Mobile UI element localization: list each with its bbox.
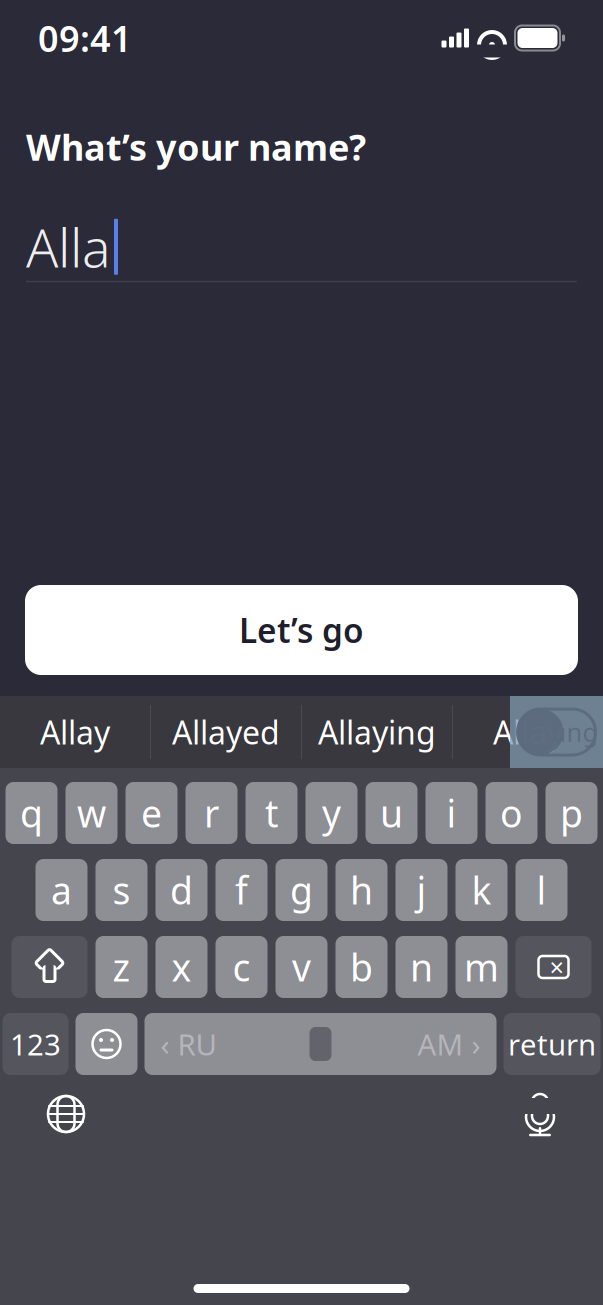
button[interactable]: Dictation [522, 1091, 558, 1137]
staticText: Allay [40, 711, 110, 753]
button[interactable]: m [455, 936, 507, 998]
staticText: Alla [26, 211, 111, 282]
staticText: t [265, 788, 278, 838]
staticText: return [508, 1024, 596, 1063]
button[interactable]: p [545, 782, 597, 844]
staticText: r [204, 788, 219, 838]
staticText: x [171, 942, 191, 992]
staticText: Allay [493, 711, 563, 753]
button[interactable]: c [215, 936, 267, 998]
staticText: y [322, 788, 341, 838]
button[interactable]: Next keyboard [45, 1093, 87, 1135]
staticText: z [112, 942, 130, 992]
staticText: o [500, 788, 523, 838]
button[interactable]: v [275, 936, 327, 998]
staticText: q [20, 788, 43, 838]
button[interactable]: j [395, 859, 447, 921]
staticText: 09:41 [38, 14, 132, 62]
button[interactable]: w [65, 782, 117, 844]
button[interactable]: t [245, 782, 297, 844]
button[interactable]: k [455, 859, 507, 921]
staticText: m [464, 942, 499, 992]
staticText: 123 [10, 1024, 61, 1063]
button[interactable]: g [275, 859, 327, 921]
staticText: u [380, 788, 403, 838]
button[interactable]: n [395, 936, 447, 998]
staticText: p [560, 788, 583, 838]
button[interactable]: Numbers [2, 1013, 68, 1075]
button[interactable]: q [5, 782, 57, 844]
button[interactable]: l [515, 859, 567, 921]
staticText: j [416, 865, 426, 915]
button[interactable]: Delete [515, 936, 591, 998]
staticText: h [350, 865, 373, 915]
staticText: k [471, 865, 491, 915]
staticText: v [292, 942, 311, 992]
button[interactable]: r [185, 782, 237, 844]
staticText: b [350, 942, 373, 992]
button[interactable]: Space [144, 1013, 496, 1075]
staticText: AM › [417, 1024, 480, 1063]
button[interactable]: a [35, 859, 87, 921]
staticText: ung [550, 715, 598, 749]
button[interactable]: Allay [0, 696, 150, 768]
staticText: n [410, 942, 433, 992]
staticText: ‹ RU [160, 1024, 216, 1063]
staticText: a [51, 865, 72, 915]
button[interactable]: Let’s go [25, 585, 578, 675]
staticText: d [170, 865, 193, 915]
staticText: e [141, 788, 162, 838]
staticText: × [549, 950, 563, 984]
staticText: w [77, 788, 106, 838]
button[interactable]: Return [503, 1013, 600, 1075]
button[interactable]: e [125, 782, 177, 844]
staticText: s [112, 865, 130, 915]
button[interactable]: b [335, 936, 387, 998]
staticText: c [232, 942, 250, 992]
button[interactable]: Shift [11, 936, 87, 998]
staticText: Let’s go [239, 608, 364, 652]
staticText: l [536, 865, 546, 915]
staticText: What’s your name? [26, 123, 366, 171]
button[interactable]: Emoji [75, 1013, 137, 1075]
button[interactable]: Allaying [302, 696, 452, 768]
staticText: g [290, 865, 313, 915]
button[interactable]: x [155, 936, 207, 998]
button[interactable]: o [485, 782, 537, 844]
button[interactable]: d [155, 859, 207, 921]
staticText: Allaying [318, 711, 436, 753]
staticText: i [446, 788, 456, 838]
staticText: Allayed [172, 711, 280, 753]
button[interactable]: z [95, 936, 147, 998]
button[interactable]: i [425, 782, 477, 844]
button[interactable]: s [95, 859, 147, 921]
button[interactable]: Allay [453, 696, 603, 768]
staticText: f [235, 865, 248, 915]
button[interactable]: Allayed [151, 696, 301, 768]
button[interactable]: h [335, 859, 387, 921]
button[interactable]: f [215, 859, 267, 921]
button[interactable]: y [305, 782, 357, 844]
button[interactable]: u [365, 782, 417, 844]
